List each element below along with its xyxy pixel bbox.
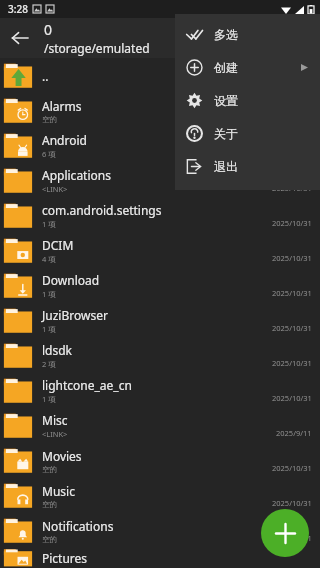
staticText: 3:28 (8, 2, 28, 16)
staticText: 多选 (214, 27, 238, 42)
staticText: 空的 (42, 500, 57, 509)
staticText: 空的 (42, 115, 57, 124)
staticText: 设置 (214, 93, 238, 108)
button[interactable]: Misc (0, 408, 320, 443)
staticText: 1 项 (42, 289, 56, 299)
staticText: Download (42, 272, 100, 288)
staticText: 关于 (214, 126, 238, 141)
button[interactable]: Back (0, 18, 40, 58)
staticText: 2025/10/31 (272, 393, 312, 403)
staticText: ldsdk (42, 342, 73, 358)
button[interactable]: Add (261, 509, 309, 557)
staticText: DCIM (42, 237, 74, 253)
staticText: Misc (42, 412, 68, 428)
staticText: 2025/10/31 (272, 183, 312, 193)
staticText: 2025/10/31 (272, 498, 312, 508)
staticText: com.android.settings (42, 202, 162, 218)
staticText: /storage/emulated (44, 40, 150, 56)
staticText: Android (42, 132, 87, 148)
staticText: 2025/10/31 (272, 218, 312, 228)
staticText: 2025/10/31 (272, 323, 312, 333)
staticText: Applications (42, 167, 111, 183)
button[interactable]: Movies (0, 443, 320, 478)
button[interactable]: com.android.settings (0, 198, 320, 233)
staticText: 2025/10/31 (272, 533, 312, 543)
button[interactable]: Pictures (0, 548, 320, 568)
staticText: lightcone_ae_cn (42, 377, 132, 393)
staticText: 2025/10/31 (272, 253, 312, 263)
button[interactable]: DCIM (0, 233, 320, 268)
staticText: 1 项 (42, 394, 56, 404)
button[interactable]: 设置 (175, 84, 320, 117)
staticText: 2025/10/31 (272, 358, 312, 368)
staticText: 2025/10/31 (272, 463, 312, 473)
staticText: 空的 (42, 535, 57, 544)
staticText: Movies (42, 448, 82, 464)
button[interactable]: 创建 (175, 51, 320, 84)
staticText: .. (42, 68, 49, 84)
button[interactable]: 多选 (175, 18, 320, 51)
button[interactable]: Applications (0, 163, 320, 198)
staticText: 1 项 (42, 219, 56, 229)
staticText: JuziBrowser (42, 307, 108, 323)
button[interactable]: .. (0, 58, 320, 93)
staticText: 空的 (42, 465, 57, 474)
staticText: Notifications (42, 518, 114, 534)
button[interactable]: lightcone_ae_cn (0, 373, 320, 408)
staticText: Pictures (42, 550, 88, 566)
button[interactable]: Notifications (0, 513, 320, 548)
staticText: 1 项 (42, 324, 56, 334)
button[interactable]: Alarms (0, 93, 320, 128)
staticText: <LINK> (42, 429, 68, 439)
staticText: 2025/10/31 (272, 288, 312, 298)
staticText: <LINK> (42, 184, 68, 194)
staticText: 0 (44, 20, 53, 39)
staticText: 2 项 (42, 359, 56, 369)
button[interactable]: Android (0, 128, 320, 163)
staticText: 创建 (214, 60, 238, 75)
staticText: 退出 (214, 159, 238, 174)
staticText: 6 项 (42, 149, 56, 159)
button[interactable]: Download (0, 268, 320, 303)
button[interactable]: 退出 (175, 150, 320, 183)
button[interactable]: ldsdk (0, 338, 320, 373)
button[interactable]: Music (0, 478, 320, 513)
button[interactable]: JuziBrowser (0, 303, 320, 338)
staticText: Music (42, 483, 75, 499)
staticText: 2025/9/11 (276, 428, 312, 438)
staticText: Alarms (42, 98, 82, 114)
staticText: 4 项 (42, 254, 56, 264)
button[interactable]: 关于 (175, 117, 320, 150)
